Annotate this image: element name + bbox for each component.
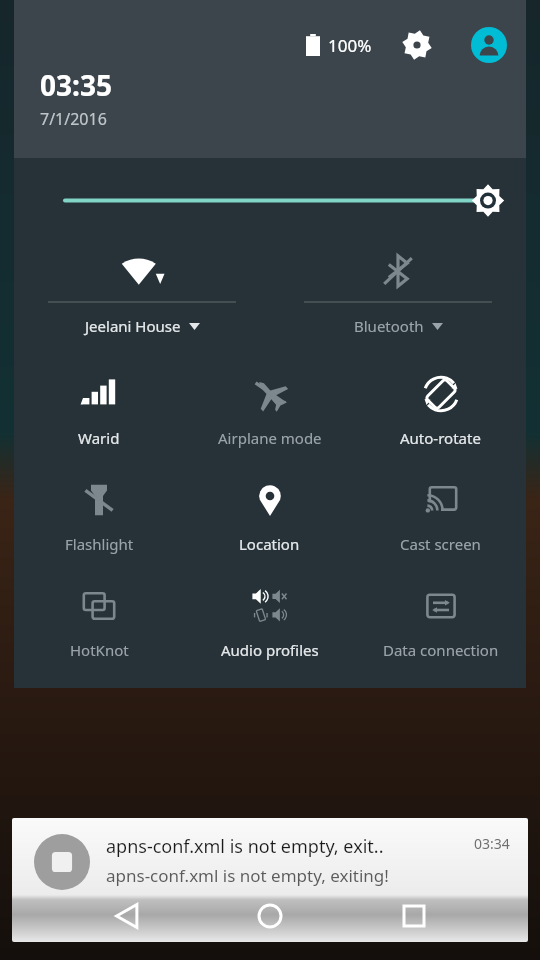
button[interactable]: Home <box>241 890 299 942</box>
staticText: Warid <box>78 428 120 448</box>
button[interactable]: Brightness <box>14 158 526 234</box>
button[interactable]: User profile <box>470 26 508 64</box>
button[interactable]: Audio profiles <box>184 568 355 674</box>
staticText: HotKnot <box>70 640 129 660</box>
staticText: 7/1/2016 <box>40 108 107 130</box>
staticText: Data connection <box>383 640 499 660</box>
button[interactable]: apns-conf.xml is not empty, exit.. <box>12 818 528 942</box>
staticText: 03:35 <box>40 66 112 104</box>
staticText: Airplane mode <box>218 428 322 448</box>
button[interactable]: Location <box>184 462 355 568</box>
staticText: Location <box>239 534 300 554</box>
button[interactable]: Jeelani House <box>14 234 270 344</box>
button[interactable]: Back <box>98 890 156 942</box>
button[interactable]: Warid <box>14 356 184 462</box>
staticText: Cast screen <box>400 534 481 554</box>
other: Battery <box>306 34 320 56</box>
staticText: apns-conf.xml is not empty, exiting! <box>106 864 389 887</box>
button[interactable]: Settings <box>400 28 434 62</box>
button[interactable]: Recent apps <box>385 890 443 942</box>
staticText: 100% <box>328 34 372 57</box>
staticText: Jeelani House <box>85 316 181 336</box>
button[interactable]: Bluetooth <box>270 234 526 344</box>
button[interactable]: Data connection <box>355 568 526 674</box>
staticText: Audio profiles <box>221 640 319 660</box>
button[interactable]: HotKnot <box>14 568 184 674</box>
staticText: Flashlight <box>65 534 134 554</box>
staticText: apns-conf.xml is not empty, exit.. <box>106 834 384 859</box>
staticText: Bluetooth <box>354 316 424 336</box>
button[interactable]: Cast screen <box>355 462 526 568</box>
staticText: 03:34 <box>474 834 510 853</box>
button[interactable]: Auto-rotate <box>355 356 526 462</box>
button[interactable]: Flashlight <box>14 462 184 568</box>
button[interactable]: Airplane mode <box>184 356 355 462</box>
staticText: Auto-rotate <box>400 428 481 448</box>
